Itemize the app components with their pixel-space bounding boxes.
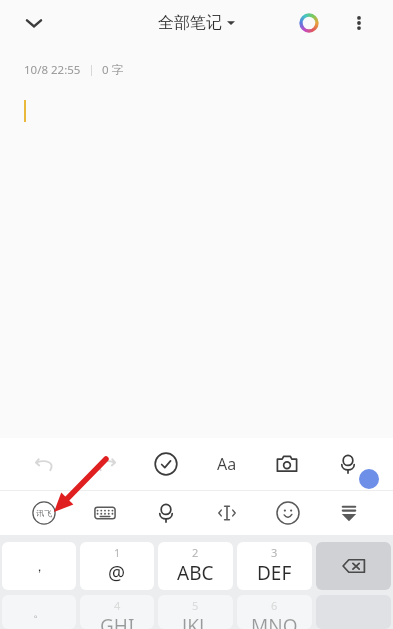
staticText: 4 [114,598,121,613]
button[interactable]: Todo [143,441,189,487]
button[interactable]: Camera [264,441,310,487]
staticText: ， [33,558,46,574]
button[interactable]: ABC [158,542,233,590]
button[interactable]: Theme [289,3,329,43]
staticText: GHI [100,613,135,629]
staticText: 1 [114,545,121,560]
button[interactable]: More options [339,3,379,43]
button[interactable]: Keyboard layout [82,491,128,535]
staticText: 6 [271,598,278,613]
staticText: 2 [192,545,199,560]
staticText: 3 [271,545,278,560]
staticText: @ [108,560,126,586]
button[interactable]: Hide keyboard [326,491,372,535]
staticText: 讯飞 [36,508,52,518]
button[interactable]: 全部笔记 [158,13,235,33]
button[interactable]: DEF [237,542,312,590]
button[interactable]: @ [80,542,154,590]
staticText: 全部笔记 [158,13,222,33]
button[interactable]: Voice input [143,491,189,535]
button[interactable]: Move cursor [204,491,250,535]
button[interactable]: Emoji [265,491,311,535]
staticText: ABC [177,560,214,586]
staticText: 5 [192,598,199,613]
button[interactable]: ， [2,542,76,590]
button[interactable]: Text format [204,441,250,487]
staticText: Aa [217,453,237,475]
button[interactable]: Input method [21,491,67,535]
staticText: JKL [182,613,209,629]
button[interactable]: Voice [325,441,371,487]
staticText: 10/8 22:55 [24,62,81,78]
staticText: 0 字 [102,62,124,78]
button[interactable]: Redo [83,441,129,487]
button[interactable]: MNO [237,595,312,629]
button[interactable]: Backspace [316,542,391,590]
staticText: MNO [251,613,298,629]
staticText: DEF [257,560,292,586]
staticText: 。 [33,604,46,620]
button[interactable]: JKL [158,595,233,629]
button[interactable]: Collapse [10,0,58,46]
button[interactable]: Undo [22,441,68,487]
button[interactable]: GHI [80,595,154,629]
